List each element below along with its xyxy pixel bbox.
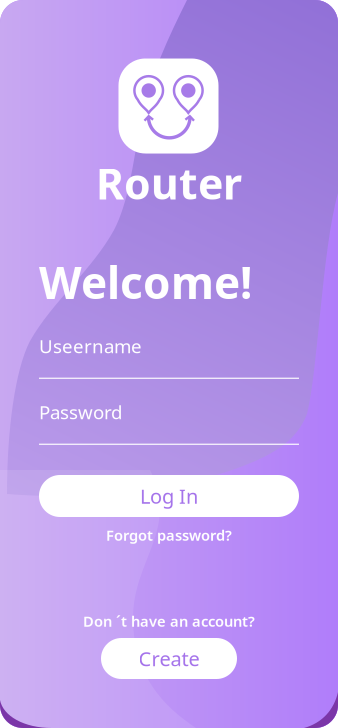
staticText: Welcome! <box>39 253 252 311</box>
button[interactable]: Forgot password? <box>99 527 239 543</box>
staticText: Useername <box>39 334 142 358</box>
staticText: Log In <box>140 483 198 509</box>
staticText: Forgot password? <box>106 525 232 545</box>
staticText: Create <box>138 645 199 672</box>
staticText: Password <box>39 400 122 424</box>
button[interactable]: Log In <box>39 475 299 517</box>
staticText: Don ´t have an account? <box>83 611 255 631</box>
staticText: Router <box>96 155 242 211</box>
button[interactable]: Create <box>101 638 237 679</box>
